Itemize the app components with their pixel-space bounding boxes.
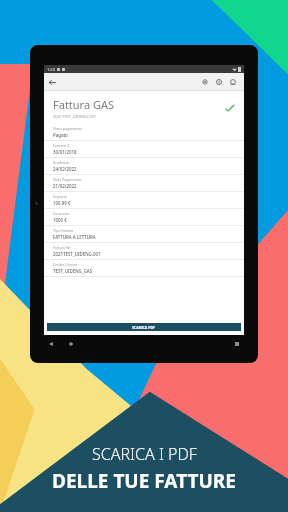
staticText: 100,99 € [53, 200, 71, 206]
staticText: Importo [53, 194, 67, 199]
button[interactable]: Home [66, 339, 76, 349]
staticText: FATTURA A LETTURA [53, 234, 96, 240]
staticText: SCARICA PDF [132, 325, 156, 330]
staticText: 30/01/2018 [53, 149, 77, 155]
staticText: 2021TEST_UIDENG.001 [53, 114, 97, 119]
button[interactable]: Scadenza [44, 158, 244, 175]
staticText: DELLE TUE FATTURE [52, 468, 236, 494]
button[interactable]: Back [44, 74, 60, 90]
staticText: Pagato [53, 132, 68, 138]
button[interactable]: Recents [232, 339, 242, 349]
button[interactable]: SCARICA PDF [47, 323, 241, 331]
staticText: 1000 € [53, 217, 67, 223]
staticText: Data Pagamento [53, 177, 82, 182]
staticText: 24/02/2022 [53, 166, 77, 172]
button[interactable]: Emessa il [44, 141, 244, 158]
staticText: Fattura GAS [53, 97, 115, 112]
button[interactable]: Fattura Nr [44, 243, 244, 260]
button[interactable]: Consumo [44, 209, 244, 226]
staticText: Codice Utenza [53, 262, 78, 267]
staticText: 1:24 [47, 67, 55, 72]
button[interactable]: Data Pagamento [44, 175, 244, 192]
staticText: Emessa il [53, 143, 69, 148]
staticText: SCARICA I PDF [92, 443, 197, 465]
staticText: Consumo [53, 211, 70, 216]
staticText: 21/02/2022 [53, 183, 77, 189]
button[interactable]: Stato pagamento [44, 124, 244, 141]
staticText: TEST_UIDENG_GAS [53, 268, 93, 274]
button[interactable]: Importo [44, 192, 244, 209]
button[interactable]: Notifications [226, 75, 240, 89]
button[interactable]: Settings [198, 75, 212, 89]
button[interactable]: Info [212, 75, 226, 89]
button[interactable]: Codice Utenza [44, 260, 244, 277]
staticText: Tipo Fattura [53, 228, 74, 233]
staticText: 2021TEST_UIDENG.001 [53, 251, 101, 257]
staticText: Fattura Nr [53, 245, 71, 250]
button[interactable]: Tipo Fattura [44, 226, 244, 243]
staticText: Scadenza [53, 160, 69, 165]
button[interactable]: Back [46, 339, 56, 349]
staticText: Stato pagamento [53, 126, 83, 131]
